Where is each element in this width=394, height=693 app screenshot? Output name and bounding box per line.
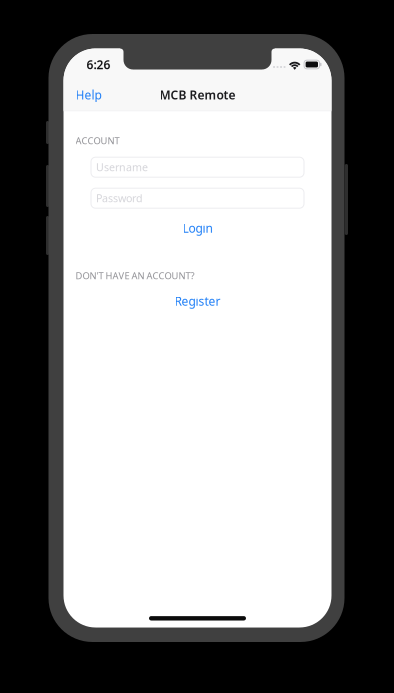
staticText: ACCOUNT [75,134,119,147]
button[interactable]: Login [63,215,331,241]
staticText: MCB Remote [159,87,235,103]
staticText: 6:26 [86,56,110,72]
button[interactable]: Help [63,82,101,108]
staticText: Username [96,160,148,174]
button[interactable]: Register [63,288,331,314]
staticText: Help [75,87,101,103]
staticText: Register [174,293,220,309]
staticText: DON'T HAVE AN ACCOUNT? [75,269,194,282]
staticText: Password [96,191,143,205]
staticText: Login [182,220,212,236]
